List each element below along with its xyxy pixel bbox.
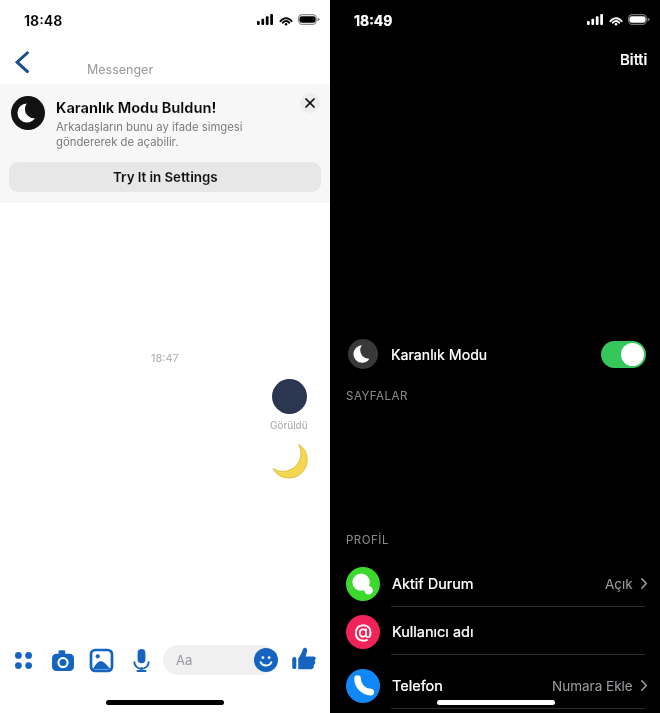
staticText: Try It in Settings [113,169,218,185]
button[interactable]: Emoji [254,648,278,672]
button[interactable]: Karanlık Modu [330,333,660,375]
staticText: 18:48 [24,12,63,29]
staticText: 18:49 [354,12,393,29]
button[interactable]: Back [9,48,37,76]
button[interactable] [601,341,646,368]
staticText: Aa [176,652,193,668]
button[interactable]: Voice message [129,645,154,675]
staticText: @ [354,620,373,643]
button[interactable]: Bitti [612,46,656,72]
staticText: Numara Ekle [552,678,633,694]
staticText: Karanlık Modu Buldun! [56,99,217,117]
staticText: Aktif Durum [392,575,474,593]
staticText: Görüldü [270,419,308,431]
button[interactable]: Photos [89,645,114,675]
staticText: Messenger [87,62,154,77]
button[interactable]: Camera [50,645,75,675]
button[interactable]: Close [300,93,320,113]
staticText: Arkadaşların bunu ay ifade simgesi gönde… [56,120,306,148]
button[interactable]: Try It in Settings [9,162,321,192]
staticText: Bitti [620,50,648,68]
button[interactable]: Telefon [330,662,660,709]
staticText: Açık [605,576,633,592]
staticText: 18:47 [151,351,179,364]
button[interactable]: Menu [11,645,36,675]
staticText: Kullanıcı adı [392,623,474,641]
staticText: PROFİL [346,533,389,547]
staticText: SAYFALAR [346,389,408,403]
button[interactable]: Like [292,647,316,671]
staticText: Karanlık Modu [391,346,488,363]
button[interactable]: Aktif Durum [330,560,660,607]
staticText: Telefon [392,677,443,695]
button[interactable]: @ [330,608,660,655]
button[interactable]: Aa [163,645,276,675]
